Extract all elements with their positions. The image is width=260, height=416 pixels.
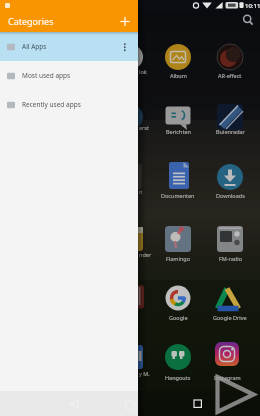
staticText: lok (139, 68, 147, 75)
button[interactable] (188, 394, 208, 414)
button[interactable]: Recently used apps (0, 90, 138, 119)
button[interactable]: Most used apps (0, 61, 138, 90)
staticText: Buienradar (216, 128, 245, 135)
staticText: FM-radio (219, 255, 242, 262)
staticText: erst (139, 124, 149, 131)
staticText: Categories (8, 15, 54, 27)
staticText: 10:11 (245, 2, 260, 10)
button[interactable] (120, 394, 140, 414)
button[interactable] (124, 40, 138, 54)
staticText: Google Drive (213, 314, 247, 321)
staticText: AR-effect (218, 72, 242, 79)
staticText: Berichten (166, 128, 191, 135)
staticText: Most used apps (22, 71, 71, 80)
staticText: Documenten (161, 192, 195, 199)
staticText: Flamingo (166, 255, 191, 262)
staticText: All Apps (22, 42, 47, 51)
staticText: n (139, 188, 143, 195)
staticText: Recently used apps (22, 100, 81, 109)
button[interactable]: All Apps (0, 32, 138, 61)
staticText: y M. (139, 370, 150, 377)
staticText: Downloads (216, 192, 245, 199)
button[interactable] (115, 11, 135, 31)
button[interactable] (240, 12, 258, 30)
staticText: Instagram (214, 374, 241, 381)
staticText: Hangouts (165, 374, 191, 381)
staticText: Google (169, 314, 188, 321)
staticText: Album (170, 72, 187, 79)
staticText: nder (139, 251, 152, 258)
